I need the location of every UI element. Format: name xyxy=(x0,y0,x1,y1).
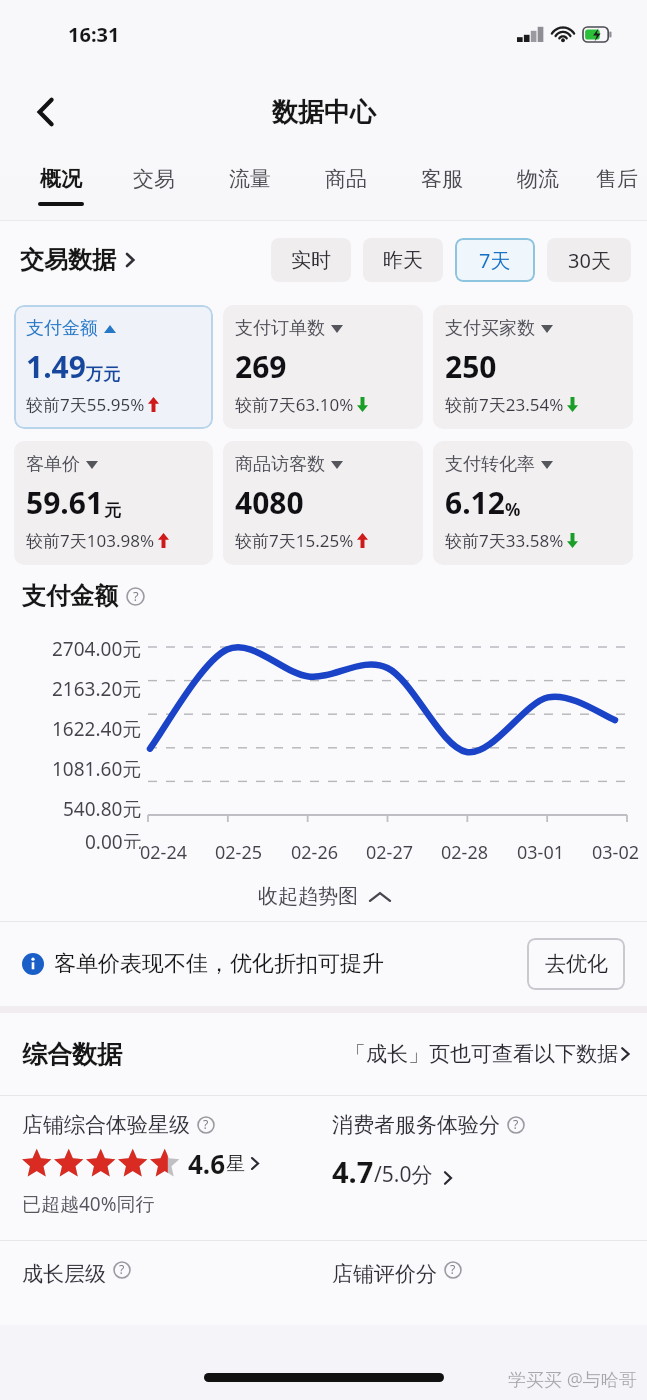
staticText: 4080 xyxy=(235,482,304,523)
staticText: 学买买 @与哈哥 xyxy=(508,1367,637,1392)
staticText: 59.61 xyxy=(26,482,104,523)
staticText: 2163.20元 xyxy=(52,676,142,702)
staticText: 02-28 xyxy=(441,840,488,865)
button[interactable]: 概况 xyxy=(16,152,106,220)
staticText: 4.6 xyxy=(188,1146,226,1181)
staticText: ? xyxy=(203,1116,209,1133)
button[interactable]: 7天 xyxy=(455,238,535,282)
staticText: 较前7天15.25% xyxy=(235,529,354,552)
staticText: 收起趋势图 xyxy=(258,884,358,909)
staticText: 万元 xyxy=(86,364,120,385)
button[interactable]: 昨天 xyxy=(363,238,443,282)
staticText: 1081.60元 xyxy=(52,756,142,782)
staticText: 流量 xyxy=(229,166,271,192)
button[interactable]: 商品 xyxy=(298,152,394,220)
staticText: 较前7天103.98% xyxy=(26,529,155,552)
staticText: 支付转化率 xyxy=(445,453,535,476)
button[interactable]: 支付金额 xyxy=(14,305,213,429)
staticText: 较前7天23.54% xyxy=(445,393,564,416)
staticText: 昨天 xyxy=(383,248,423,273)
staticText: 商品访客数 xyxy=(235,453,325,476)
staticText: 03-01 xyxy=(517,840,564,865)
button[interactable]: 交易 xyxy=(106,152,202,220)
staticText: ? xyxy=(119,1261,125,1278)
staticText: 30天 xyxy=(568,247,611,274)
staticText: 店铺综合体验星级 xyxy=(22,1112,190,1138)
staticText: 星 xyxy=(226,1152,245,1176)
staticText: ? xyxy=(513,1116,519,1133)
staticText: 较前7天55.95% xyxy=(26,393,145,416)
staticText: 交易 xyxy=(133,166,175,192)
staticText: 02-26 xyxy=(291,840,338,865)
staticText: 综合数据 xyxy=(22,1039,122,1070)
button[interactable]: 支付订单数 xyxy=(223,305,423,429)
staticText: 较前7天33.58% xyxy=(445,529,564,552)
staticText: 02-24 xyxy=(140,840,187,865)
staticText: 交易数据 xyxy=(20,245,116,275)
button[interactable]: 30天 xyxy=(547,238,631,282)
staticText: 去优化 xyxy=(545,951,608,977)
staticText: 269 xyxy=(235,346,287,387)
staticText: 1622.40元 xyxy=(52,716,142,742)
staticText: 540.80元 xyxy=(63,796,142,822)
staticText: 较前7天63.10% xyxy=(235,393,354,416)
button[interactable]: 实时 xyxy=(271,238,351,282)
staticText: 客单价表现不佳，优化折扣可提升 xyxy=(54,950,384,978)
button[interactable]: 支付转化率 xyxy=(433,441,633,565)
staticText: 250 xyxy=(445,346,497,387)
button[interactable]: 交易数据 xyxy=(20,245,136,275)
staticText: 支付金额 xyxy=(22,581,118,611)
staticText: 2704.00元 xyxy=(52,636,142,662)
button[interactable]: 商品访客数 xyxy=(223,441,423,565)
staticText: 6.12 xyxy=(445,482,505,523)
staticText: 物流 xyxy=(517,166,559,192)
staticText: 售后 xyxy=(596,166,638,192)
staticText: 数据中心 xyxy=(272,96,376,129)
button[interactable]: 流量 xyxy=(202,152,298,220)
staticText: 消费者服务体验分 xyxy=(332,1112,500,1138)
button[interactable]: 售后 xyxy=(586,152,647,220)
staticText: 支付金额 xyxy=(26,317,98,340)
staticText: 支付订单数 xyxy=(235,317,325,340)
staticText: 16:31 xyxy=(68,21,120,48)
button[interactable]: 去优化 xyxy=(527,938,625,990)
staticText: 实时 xyxy=(291,248,331,273)
staticText: 已超越40%同行 xyxy=(22,1191,155,1217)
button[interactable]: 4.6 xyxy=(22,1146,260,1181)
button[interactable]: 「成长」页也可查看以下数据 xyxy=(345,1041,631,1067)
staticText: 7天 xyxy=(479,247,511,274)
staticText: /5.0分 xyxy=(374,1160,433,1189)
button[interactable]: Back xyxy=(22,88,70,136)
staticText: 「成长」页也可查看以下数据 xyxy=(345,1041,618,1067)
staticText: 1.49 xyxy=(26,346,86,387)
button[interactable]: 物流 xyxy=(490,152,586,220)
staticText: 客单价 xyxy=(26,453,80,476)
staticText: ? xyxy=(133,587,139,605)
staticText: 03-02 xyxy=(592,840,639,865)
staticText: 0.00元 xyxy=(85,829,142,849)
staticText: 成长层级 xyxy=(22,1261,106,1287)
staticText: 元 xyxy=(104,500,121,521)
button[interactable]: 客单价 xyxy=(14,441,213,565)
staticText: 客服 xyxy=(421,166,463,192)
staticText: 4.7 xyxy=(332,1152,374,1191)
staticText: 02-25 xyxy=(215,840,262,865)
staticText: 概况 xyxy=(40,166,82,192)
staticText: 商品 xyxy=(325,166,367,192)
staticText: 店铺评价分 xyxy=(332,1261,437,1287)
staticText: 支付买家数 xyxy=(445,317,535,340)
button[interactable]: 客服 xyxy=(394,152,490,220)
button[interactable]: 4.7 xyxy=(332,1152,453,1191)
button[interactable]: 支付买家数 xyxy=(433,305,633,429)
staticText: ? xyxy=(450,1261,456,1278)
staticText: 02-27 xyxy=(366,840,413,865)
staticText: % xyxy=(505,498,521,521)
button[interactable]: 收起趋势图 xyxy=(0,871,647,921)
